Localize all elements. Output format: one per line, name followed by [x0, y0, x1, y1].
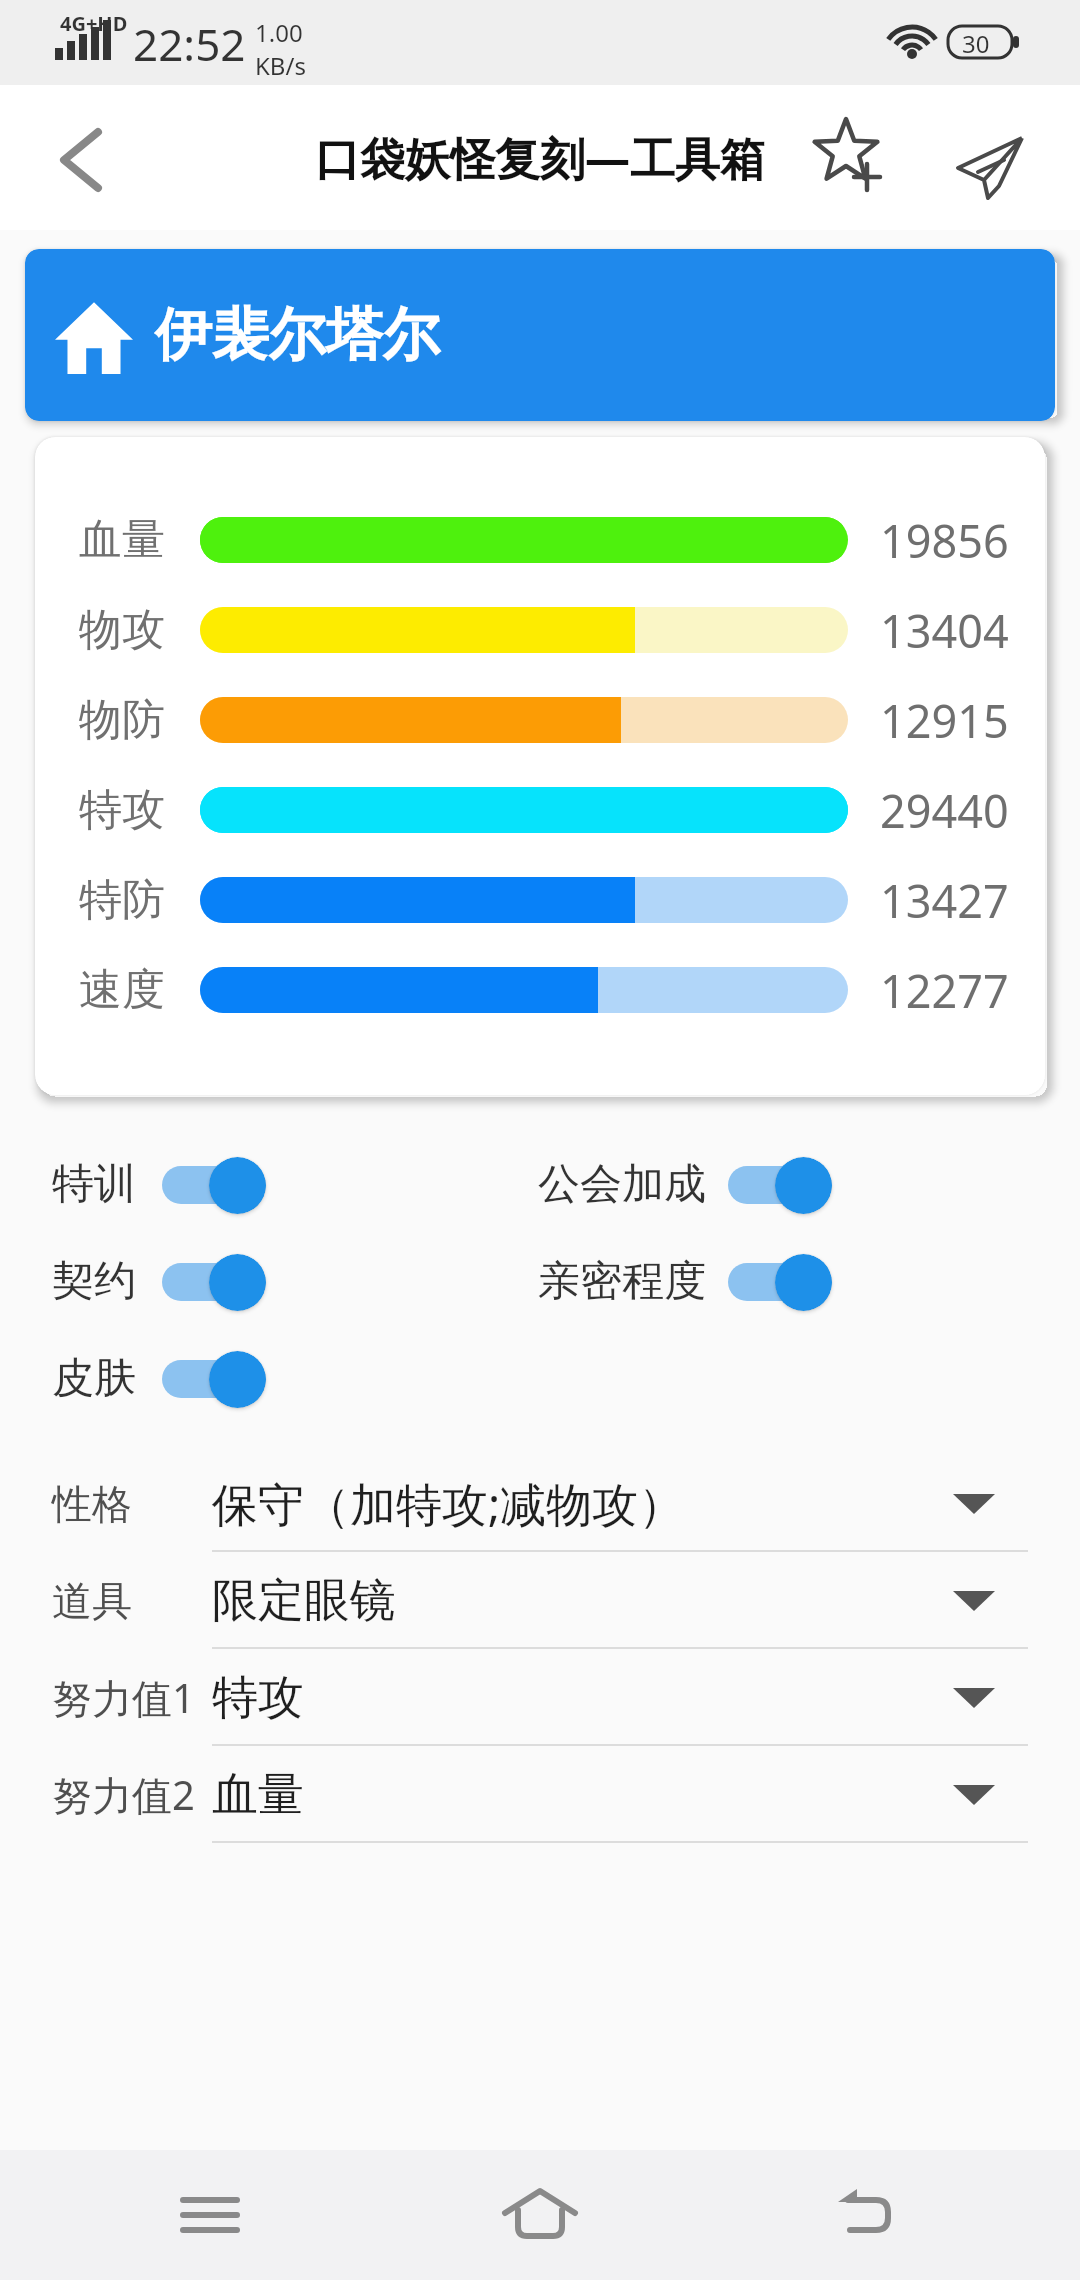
- staticText: 特训: [52, 1158, 136, 1211]
- staticText: 19856: [880, 510, 1009, 571]
- staticText: 血量: [79, 513, 165, 567]
- staticText: 努力值1: [52, 1670, 195, 1725]
- staticText: 亲密程度: [538, 1255, 706, 1308]
- staticText: 特攻: [79, 783, 165, 837]
- staticText: 特攻: [212, 1669, 304, 1727]
- button[interactable]: 努力值1: [0, 1649, 1080, 1746]
- staticText: 4G+HD: [60, 10, 128, 37]
- button[interactable]: 伊裴尔塔尔: [25, 249, 1055, 421]
- staticText: 努力值2: [52, 1767, 195, 1822]
- staticText: 限定眼镜: [212, 1572, 396, 1630]
- staticText: 皮肤: [52, 1352, 136, 1405]
- staticText: 保守（加特攻;减物攻）: [212, 1472, 685, 1535]
- button[interactable]: [800, 105, 896, 201]
- button[interactable]: 努力值2: [0, 1746, 1080, 1843]
- button[interactable]: [160, 2165, 260, 2265]
- button[interactable]: 道具: [0, 1552, 1080, 1649]
- staticText: 30: [962, 27, 990, 60]
- staticText: KB/s: [255, 49, 306, 82]
- staticText: 1.00: [255, 16, 303, 49]
- staticText: 血量: [212, 1766, 304, 1824]
- staticText: 13427: [880, 870, 1009, 931]
- staticText: 速度: [79, 963, 165, 1017]
- staticText: 22:52: [133, 14, 246, 74]
- button[interactable]: 性格: [0, 1455, 1080, 1552]
- button[interactable]: [728, 1253, 832, 1311]
- button[interactable]: [818, 2165, 918, 2265]
- staticText: 物攻: [79, 603, 165, 657]
- button[interactable]: [162, 1350, 266, 1408]
- button[interactable]: [728, 1156, 832, 1214]
- button[interactable]: [945, 107, 1035, 197]
- button[interactable]: [490, 2165, 590, 2265]
- staticText: 特防: [79, 873, 165, 927]
- button[interactable]: [40, 120, 120, 200]
- staticText: 13404: [880, 600, 1009, 661]
- staticText: 契约: [52, 1255, 136, 1308]
- staticText: 29440: [880, 780, 1009, 841]
- staticText: 伊裴尔塔尔: [155, 299, 440, 371]
- staticText: 道具: [52, 1576, 132, 1626]
- staticText: 公会加成: [538, 1158, 706, 1211]
- staticText: 性格: [52, 1479, 132, 1529]
- staticText: 口袋妖怪复刻—工具箱: [315, 127, 766, 188]
- staticText: 12277: [880, 960, 1009, 1021]
- button[interactable]: [162, 1156, 266, 1214]
- button[interactable]: [162, 1253, 266, 1311]
- staticText: 物防: [79, 693, 165, 747]
- staticText: 12915: [880, 690, 1009, 751]
